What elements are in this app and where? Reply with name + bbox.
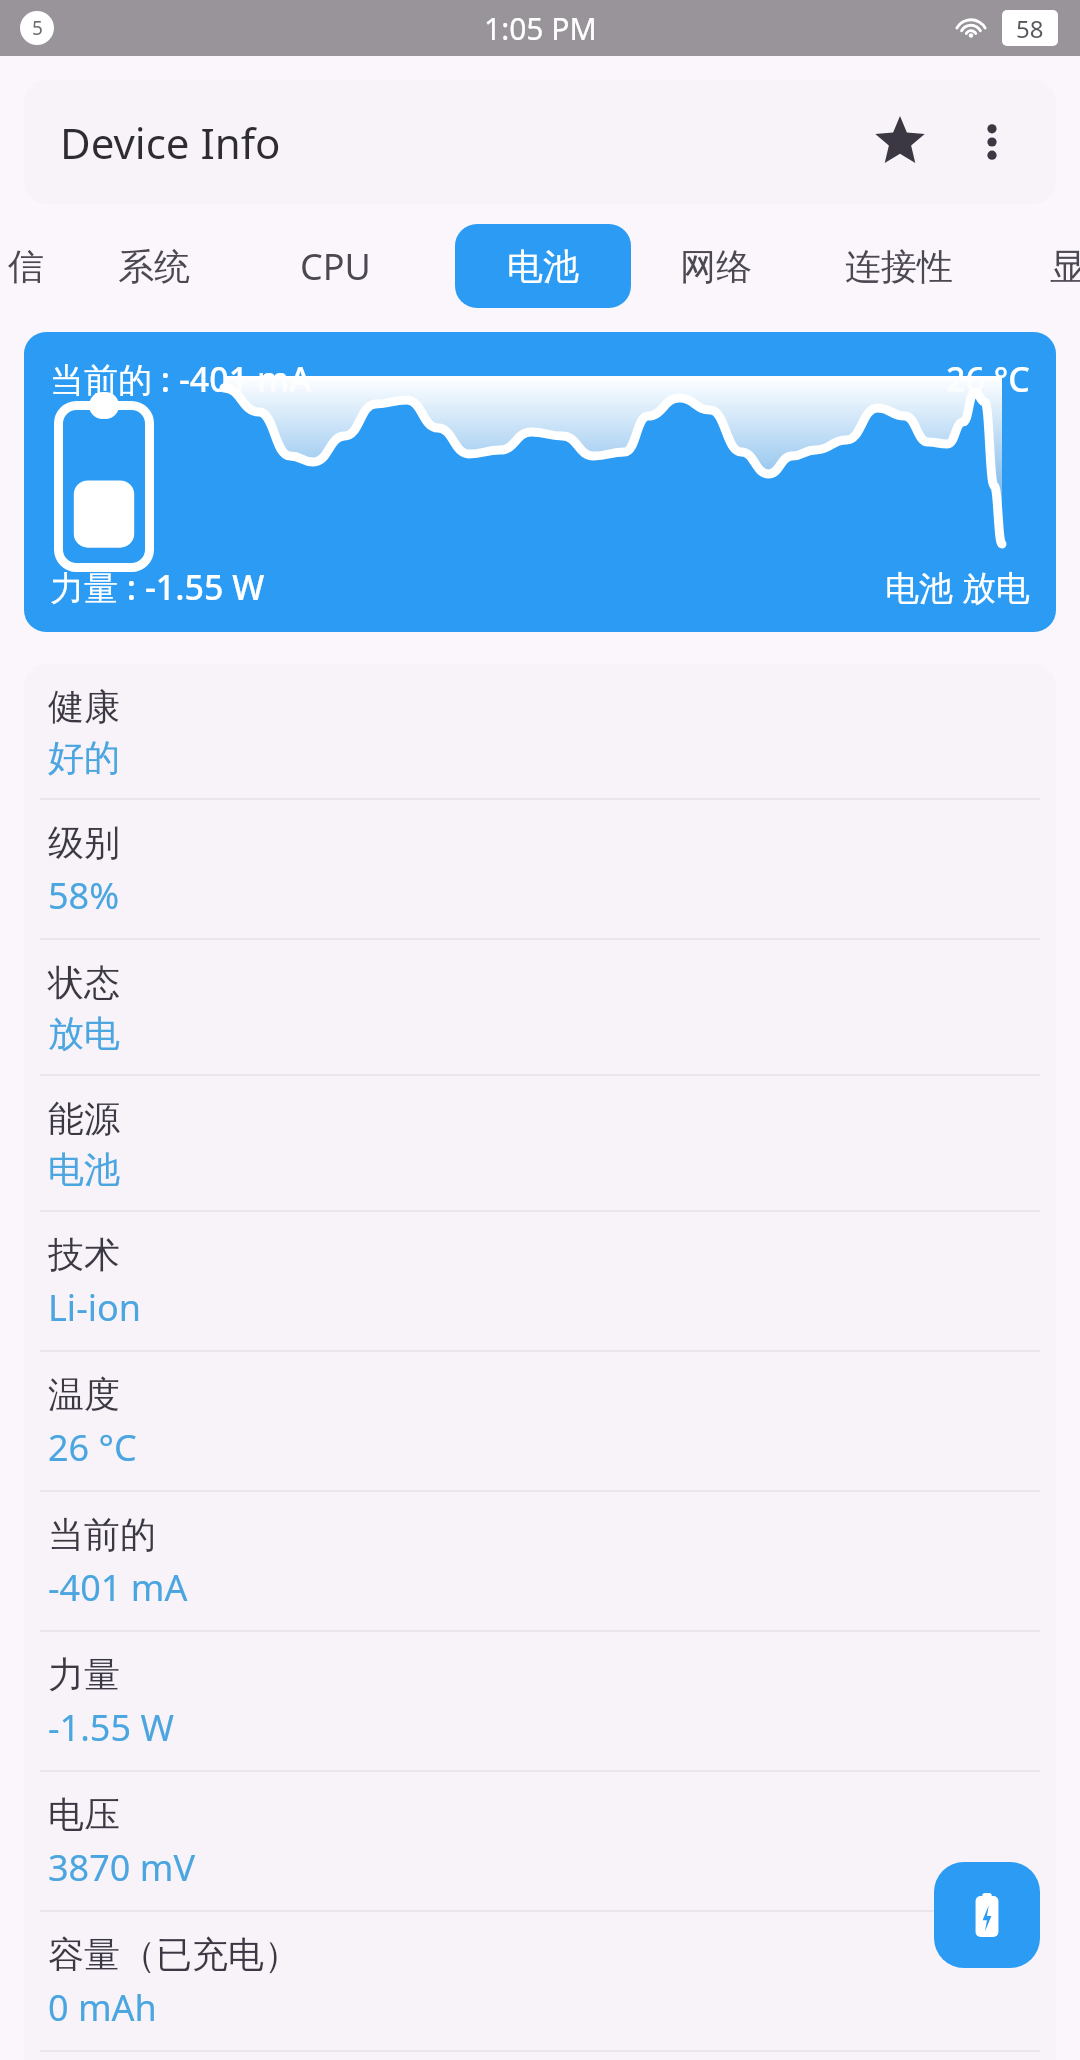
- button[interactable]: 系统: [118, 244, 190, 289]
- button[interactable]: 网络: [680, 244, 752, 289]
- staticText: -401 mA: [48, 1563, 188, 1612]
- staticText: 级别: [48, 820, 120, 865]
- staticText: 3870 mV: [48, 1843, 195, 1892]
- staticText: CPU: [300, 242, 371, 291]
- staticText: Li-ion: [48, 1283, 142, 1332]
- staticText: 26 °C: [48, 1423, 137, 1472]
- button[interactable]: 显: [1050, 244, 1080, 289]
- button[interactable]: 力量: [24, 1632, 1056, 1770]
- staticText: 58%: [48, 871, 120, 920]
- staticText: 健康: [48, 684, 120, 729]
- button[interactable]: 电压: [24, 1772, 1056, 1910]
- button[interactable]: Favorite: [854, 96, 946, 188]
- staticText: 电池: [507, 244, 579, 289]
- staticText: 58: [1016, 12, 1044, 45]
- staticText: Device Info: [60, 114, 281, 171]
- staticText: 系统: [118, 244, 190, 289]
- staticText: 0 mAh: [48, 1983, 157, 2032]
- staticText: 当前的: [48, 1512, 156, 1557]
- staticText: 5: [32, 15, 43, 41]
- staticText: 电压: [48, 1792, 120, 1837]
- staticText: 力量: [48, 1652, 120, 1697]
- staticText: 电池 放电: [885, 564, 1030, 610]
- button[interactable]: 健康: [24, 664, 1056, 798]
- staticText: 状态: [48, 960, 120, 1005]
- button[interactable]: 温度: [24, 1352, 1056, 1490]
- staticText: 容量（已充电）: [48, 1932, 300, 1977]
- staticText: 好的: [48, 735, 120, 780]
- staticText: 当前的 : -401 mA: [50, 356, 312, 402]
- staticText: 电池: [48, 1147, 120, 1192]
- staticText: -1.55 W: [48, 1703, 174, 1752]
- button[interactable]: Battery charge: [934, 1862, 1040, 1968]
- button[interactable]: 信: [8, 244, 44, 289]
- button[interactable]: 当前的 : -401 mA: [24, 332, 1056, 632]
- button[interactable]: 当前的: [24, 1492, 1056, 1630]
- button[interactable]: 能源: [24, 1076, 1056, 1210]
- staticText: 1:05 PM: [484, 8, 597, 49]
- staticText: 力量 : -1.55 W: [50, 564, 265, 610]
- staticText: 能源: [48, 1096, 120, 1141]
- button[interactable]: 电池: [455, 224, 631, 308]
- button[interactable]: 级别: [24, 800, 1056, 938]
- button[interactable]: 容量（已充电）: [24, 1912, 1056, 2050]
- button[interactable]: More options: [946, 96, 1038, 188]
- button[interactable]: 状态: [24, 940, 1056, 1074]
- staticText: 温度: [48, 1372, 120, 1417]
- button[interactable]: 连接性: [845, 244, 953, 289]
- staticText: 网络: [680, 244, 752, 289]
- staticText: 连接性: [845, 244, 953, 289]
- staticText: 26 °C: [946, 356, 1030, 402]
- staticText: 放电: [48, 1011, 120, 1056]
- button[interactable]: CPU: [300, 242, 371, 291]
- button[interactable]: 技术: [24, 1212, 1056, 1350]
- staticText: 技术: [48, 1232, 120, 1277]
